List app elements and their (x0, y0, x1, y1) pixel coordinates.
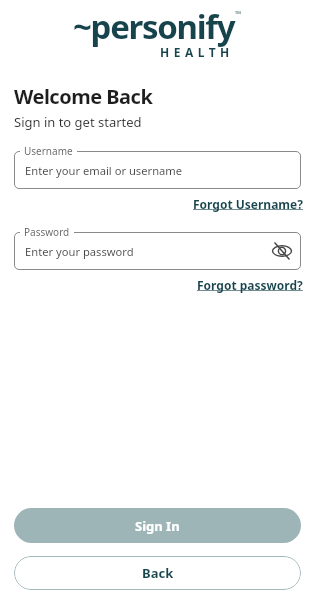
staticText: Sign In (135, 517, 180, 535)
staticText: HEALTH (160, 44, 234, 60)
staticText: Back (142, 564, 174, 582)
staticText: ~personify (73, 4, 235, 49)
staticText: Welcome Back (14, 83, 153, 110)
staticText: Enter your password (25, 244, 134, 259)
button[interactable]: Sign In (14, 508, 301, 543)
button[interactable]: Back (14, 556, 301, 590)
staticText: Password (24, 225, 70, 239)
staticText: ™ (235, 8, 242, 19)
staticText: Sign in to get started (14, 113, 142, 131)
button[interactable]: Enter your email or username (14, 151, 301, 189)
staticText: Username (24, 144, 73, 158)
button[interactable]: Forgot Username? (193, 196, 303, 212)
staticText: Enter your email or username (25, 163, 183, 178)
button[interactable]: Enter your password (14, 232, 301, 270)
button[interactable]: Forgot password? (197, 277, 303, 293)
